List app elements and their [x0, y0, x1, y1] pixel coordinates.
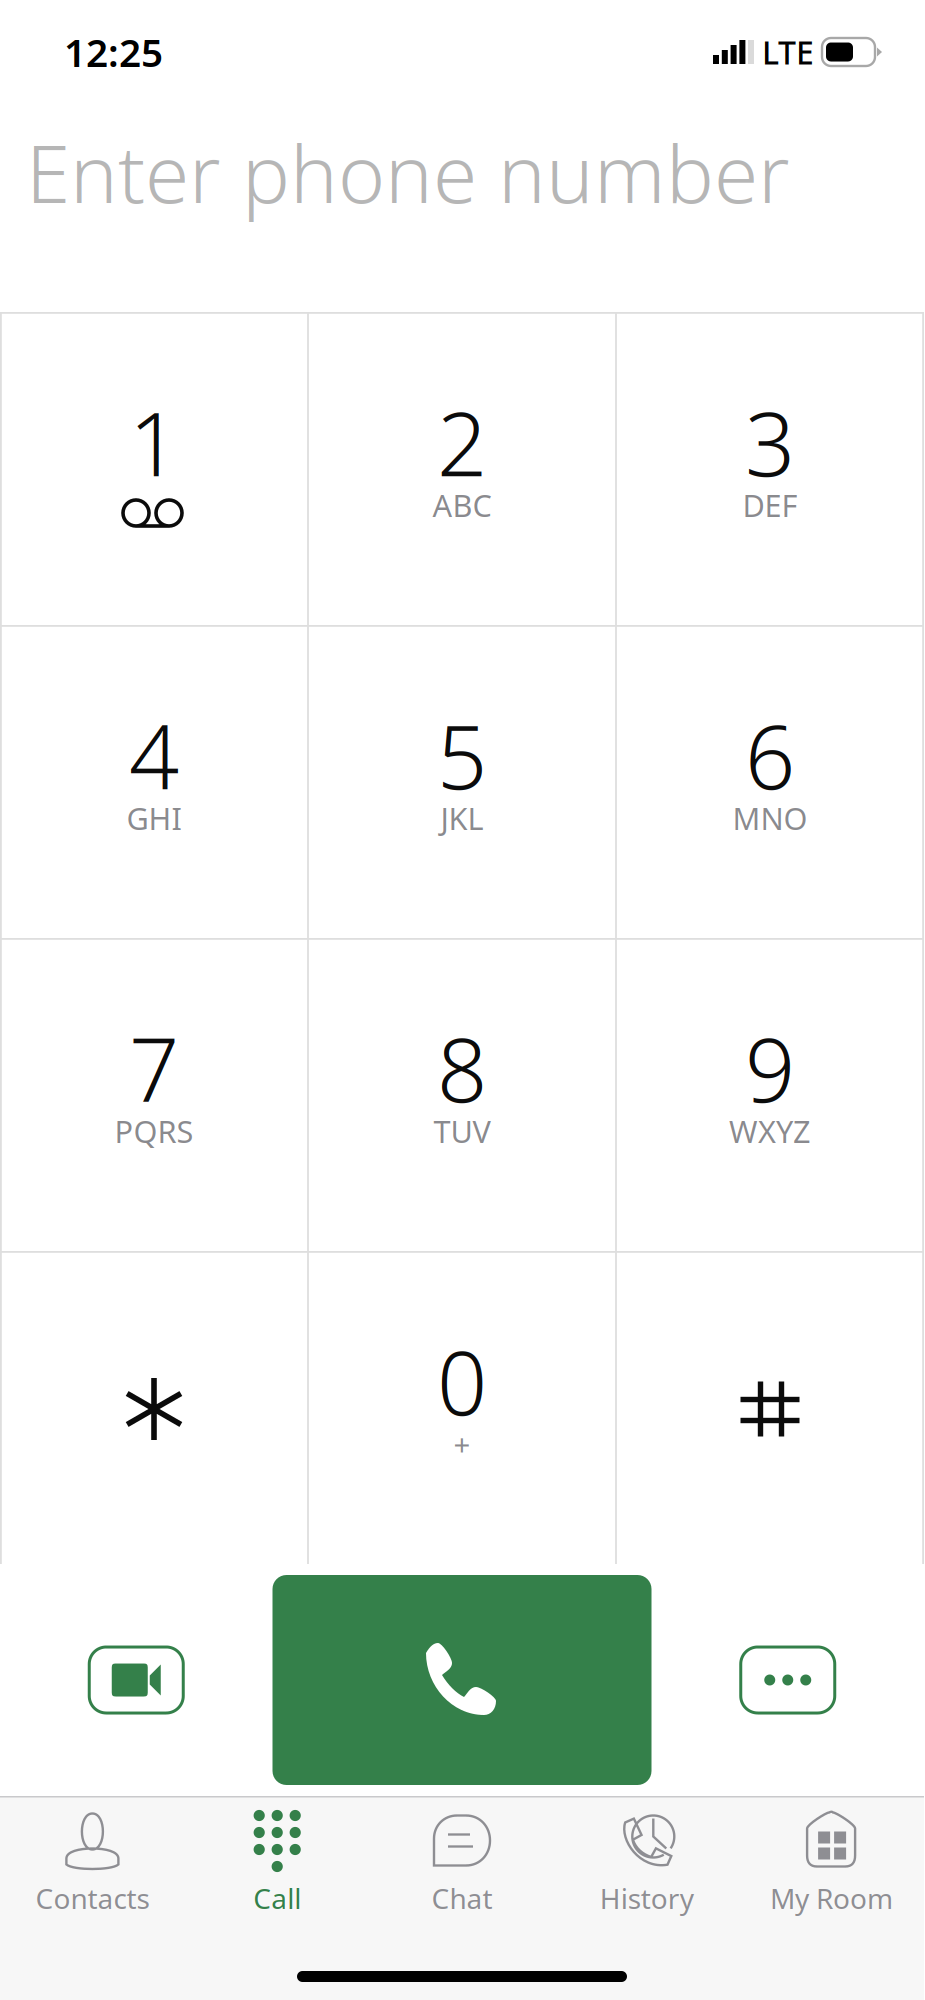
button[interactable]: Call	[272, 1575, 651, 1785]
staticText: +	[453, 1424, 470, 1463]
button[interactable]: 7	[0, 938, 308, 1251]
button[interactable]: 2	[308, 312, 616, 625]
staticText: Contacts	[35, 1879, 149, 1917]
staticText: 6	[745, 697, 795, 813]
button[interactable]: 4	[0, 625, 308, 938]
button[interactable]: Contacts	[0, 1797, 185, 1929]
staticText: 7	[129, 1010, 179, 1126]
staticText: JKL	[440, 798, 483, 838]
button[interactable]: Chat	[370, 1797, 554, 1929]
staticText: ABC	[432, 485, 491, 525]
button[interactable]: 8	[308, 938, 616, 1251]
staticText: LTE	[762, 31, 814, 73]
staticText: 12:25	[64, 26, 163, 78]
staticText: MNO	[732, 798, 807, 838]
button[interactable]: 5	[308, 625, 616, 938]
staticText: DEF	[742, 485, 797, 525]
staticText: PQRS	[114, 1111, 193, 1151]
staticText: 1	[129, 384, 179, 500]
staticText: Enter phone number	[26, 119, 790, 225]
button[interactable]: 3	[616, 312, 924, 625]
staticText: GHI	[126, 798, 181, 838]
staticText: 3	[745, 384, 795, 500]
button[interactable]: 9	[616, 938, 924, 1251]
staticText: 9	[745, 1010, 795, 1126]
button[interactable]: More	[741, 1647, 835, 1713]
button[interactable]: 0	[308, 1251, 616, 1564]
button[interactable]: History	[554, 1797, 739, 1929]
staticText: 8	[437, 1010, 487, 1126]
staticText: 4	[129, 697, 179, 813]
staticText: 0	[437, 1323, 487, 1439]
staticText: Call	[253, 1879, 301, 1917]
staticText: WXYZ	[729, 1111, 811, 1151]
button[interactable]	[616, 1251, 924, 1564]
button[interactable]	[0, 1251, 308, 1564]
button[interactable]: Video call	[89, 1647, 183, 1713]
staticText: History	[600, 1879, 694, 1917]
button[interactable]: Call	[185, 1797, 370, 1929]
staticText: 2	[437, 384, 487, 500]
staticText: Chat	[431, 1879, 492, 1917]
button[interactable]: 1	[0, 312, 308, 625]
button[interactable]: My Room	[739, 1797, 924, 1929]
button[interactable]: 6	[616, 625, 924, 938]
staticText: 5	[437, 697, 487, 813]
staticText: TUV	[433, 1111, 490, 1151]
staticText: My Room	[770, 1879, 893, 1917]
